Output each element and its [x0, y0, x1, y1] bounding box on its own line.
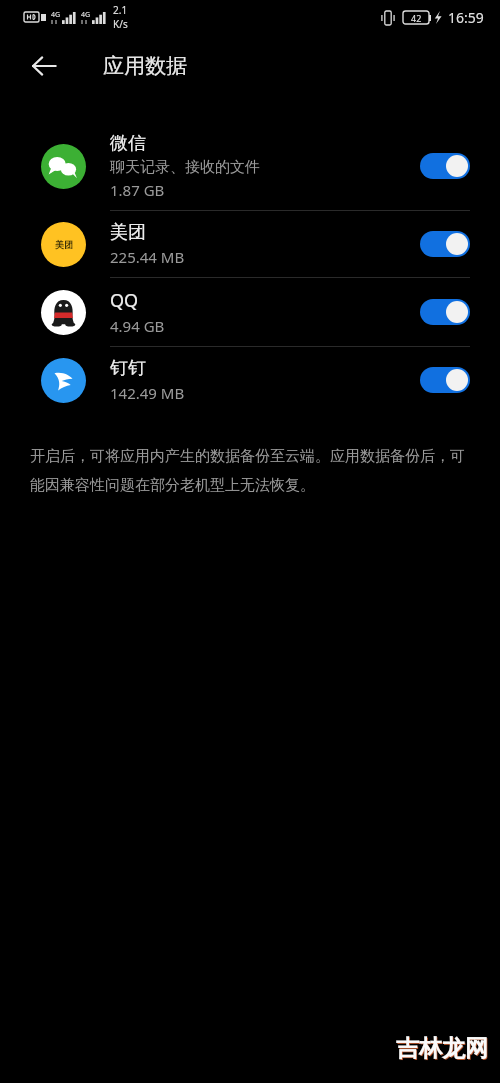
button[interactable]: 微信	[0, 122, 500, 210]
staticText: 美团	[55, 239, 73, 250]
staticText: K/s	[113, 17, 128, 31]
staticText: 开启后，可将应用内产生的数据备份至云端。应用数据备份后，可能因兼容性问题在部分老…	[30, 447, 472, 494]
staticText: 聊天记录、接收的文件	[110, 158, 260, 177]
staticText: 微信	[110, 132, 146, 155]
staticText: 4.94 GB	[110, 316, 165, 336]
staticText: 1.87 GB	[110, 180, 165, 200]
button[interactable]: Toggle backup	[420, 299, 470, 325]
button[interactable]: Toggle backup	[420, 153, 470, 179]
staticText: 42	[411, 12, 422, 24]
staticText: 吉林龙网	[396, 1034, 488, 1063]
staticText: QQ	[110, 288, 139, 313]
button[interactable]: 美团	[0, 211, 500, 277]
button[interactable]: QQ	[0, 278, 500, 346]
staticText: 4G	[51, 10, 61, 20]
button[interactable]: 钉钉	[0, 347, 500, 413]
button[interactable]: Toggle backup	[420, 367, 470, 393]
button[interactable]: Toggle backup	[420, 231, 470, 257]
staticText: 钉钉	[110, 357, 146, 380]
staticText: 225.44 MB	[110, 247, 185, 267]
staticText: 2.1	[113, 3, 128, 17]
staticText: 应用数据	[103, 53, 187, 79]
staticText: 142.49 MB	[110, 383, 185, 403]
button[interactable]: Back	[22, 44, 66, 88]
staticText: 4G	[81, 10, 91, 20]
staticText: 16:59	[448, 8, 484, 27]
staticText: 美团	[110, 221, 146, 244]
staticText: 吉林龙网	[397, 1035, 489, 1064]
